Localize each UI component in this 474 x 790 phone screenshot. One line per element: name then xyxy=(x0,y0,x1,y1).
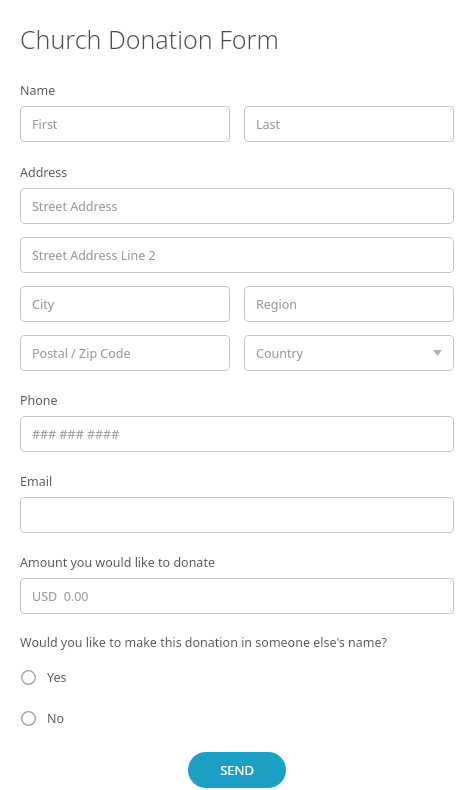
button[interactable]: Country xyxy=(244,335,454,371)
button[interactable]: USD 0.00 xyxy=(20,578,454,614)
staticText: Yes xyxy=(47,669,67,686)
staticText: Phone xyxy=(20,392,58,409)
button[interactable]: ### ### #### xyxy=(20,416,454,452)
button[interactable]: Street Address xyxy=(20,188,454,224)
button[interactable] xyxy=(20,497,454,533)
button[interactable]: No xyxy=(20,705,454,731)
button[interactable]: Yes xyxy=(20,664,454,690)
staticText: Street Address xyxy=(32,198,118,215)
staticText: Name xyxy=(20,82,56,99)
staticText: Street Address Line 2 xyxy=(32,247,156,264)
button[interactable]: Street Address Line 2 xyxy=(20,237,454,273)
button[interactable]: First xyxy=(20,106,230,142)
staticText: First xyxy=(32,116,58,133)
staticText: Last xyxy=(256,116,281,133)
staticText: Email xyxy=(20,473,53,490)
staticText: No xyxy=(47,710,65,727)
staticText: Would you like to make this donation in … xyxy=(20,634,387,651)
staticText: City xyxy=(32,296,55,313)
staticText: USD 0.00 xyxy=(32,588,89,605)
staticText: Church Donation Form xyxy=(20,22,279,56)
staticText: ### ### #### xyxy=(32,426,120,443)
button[interactable]: City xyxy=(20,286,230,322)
staticText: SEND xyxy=(220,761,254,779)
button[interactable]: Region xyxy=(244,286,454,322)
staticText: Region xyxy=(256,296,298,313)
staticText: Address xyxy=(20,164,68,181)
staticText: Postal / Zip Code xyxy=(32,345,131,362)
staticText: Amount you would like to donate xyxy=(20,554,215,571)
staticText: Country xyxy=(256,345,303,362)
button[interactable]: Last xyxy=(244,106,454,142)
button[interactable]: SEND xyxy=(188,752,286,788)
button[interactable]: Postal / Zip Code xyxy=(20,335,230,371)
